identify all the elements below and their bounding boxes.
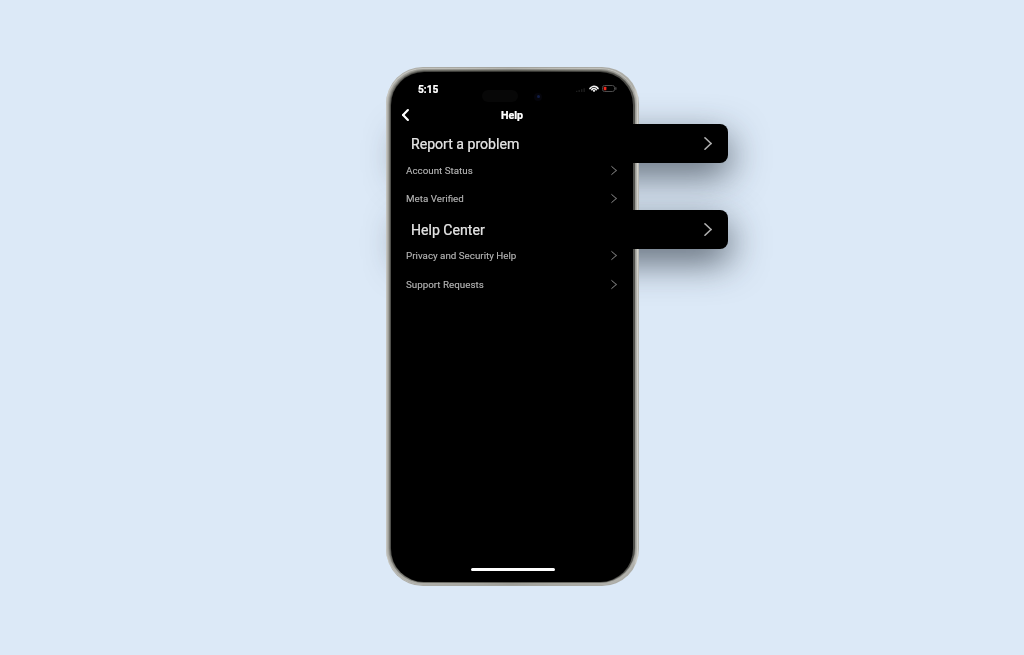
staticText: 5:15: [418, 84, 439, 96]
button[interactable]: Meta Verified: [391, 184, 633, 212]
button[interactable]: Back: [391, 101, 419, 129]
staticText: Help Center: [411, 222, 485, 239]
button[interactable]: Help Center: [401, 210, 728, 249]
staticText: Help: [501, 109, 523, 121]
button[interactable]: Report a problem: [401, 124, 728, 163]
staticText: Report a problem: [411, 136, 520, 153]
staticText: Support Requests: [406, 279, 484, 290]
button[interactable]: Support Requests: [391, 270, 633, 298]
staticText: Meta Verified: [406, 193, 464, 204]
staticText: Privacy and Security Help: [406, 250, 517, 261]
staticText: Account Status: [406, 165, 473, 176]
button[interactable]: Privacy and Security Help: [391, 241, 633, 269]
button[interactable]: Account Status: [391, 156, 633, 184]
